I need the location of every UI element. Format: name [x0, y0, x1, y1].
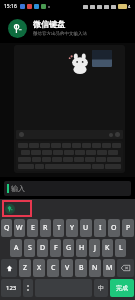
- button[interactable]: E: [27, 219, 38, 237]
- button[interactable]: Emoji: [94, 279, 108, 297]
- button[interactable]: X: [33, 259, 45, 277]
- button[interactable]: D: [37, 239, 48, 257]
- staticText: W: [16, 223, 23, 233]
- button[interactable]: Shift: [1, 259, 17, 277]
- staticText: E: [31, 223, 35, 233]
- button[interactable]: U: [80, 219, 92, 237]
- button[interactable]: WeChat keyboard switch: [2, 200, 32, 217]
- staticText: O: [111, 223, 117, 233]
- button[interactable]: 123: [1, 279, 21, 297]
- staticText: 完成: [116, 284, 128, 292]
- button[interactable]: Q: [1, 219, 12, 237]
- staticText: D: [40, 243, 46, 253]
- button[interactable]: O: [108, 219, 120, 237]
- staticText: K: [105, 243, 110, 253]
- staticText: P: [126, 223, 131, 233]
- staticText: J: [94, 243, 96, 253]
- button[interactable]: I: [94, 219, 106, 237]
- button[interactable]: W: [14, 219, 25, 237]
- staticText: R: [43, 223, 48, 233]
- button[interactable]: P: [122, 219, 134, 237]
- staticText: 123: [6, 284, 17, 292]
- button[interactable]: Backspace: [117, 259, 134, 277]
- button[interactable]: Comma: [23, 279, 33, 297]
- button[interactable]: 完成: [110, 279, 134, 297]
- button[interactable]: Y: [66, 219, 78, 237]
- staticText: 4: [128, 4, 131, 9]
- staticText: G: [66, 243, 72, 253]
- button[interactable]: B: [75, 259, 87, 277]
- button[interactable]: V: [61, 259, 73, 277]
- button[interactable]: 输入: [4, 181, 131, 196]
- staticText: L: [119, 243, 123, 253]
- staticText: Q: [4, 223, 10, 233]
- button[interactable]: WeChat Keyboard logo: [8, 19, 27, 38]
- button[interactable]: T: [53, 219, 64, 237]
- staticText: B: [79, 263, 84, 273]
- staticText: 15:16: [4, 3, 17, 10]
- staticText: 微信键盘: [33, 19, 65, 29]
- button[interactable]: F: [50, 239, 61, 257]
- button[interactable]: J: [89, 239, 100, 257]
- staticText: Y: [70, 223, 74, 233]
- button[interactable]: G: [63, 239, 74, 257]
- button[interactable]: N: [89, 259, 101, 277]
- staticText: F: [54, 243, 58, 253]
- button[interactable]: S: [24, 239, 35, 257]
- staticText: Z: [23, 263, 28, 273]
- staticText: S: [28, 243, 32, 253]
- staticText: 微信官方出品的中文输入法: [33, 31, 87, 37]
- staticText: T: [57, 223, 61, 233]
- staticText: 输入: [11, 184, 25, 193]
- button[interactable]: Z: [19, 259, 31, 277]
- button[interactable]: C: [47, 259, 59, 277]
- staticText: V: [65, 263, 70, 273]
- staticText: H: [79, 243, 85, 253]
- staticText: A: [14, 243, 19, 253]
- staticText: U: [83, 223, 89, 233]
- button[interactable]: K: [102, 239, 113, 257]
- button[interactable]: R: [40, 219, 51, 237]
- staticText: 中: [98, 284, 104, 292]
- button[interactable]: M: [103, 259, 115, 277]
- staticText: I: [99, 223, 102, 233]
- staticText: C: [51, 263, 56, 273]
- staticText: M: [106, 263, 113, 273]
- staticText: X: [37, 263, 42, 273]
- staticText: N: [92, 263, 98, 273]
- button[interactable]: H: [76, 239, 87, 257]
- button[interactable]: A: [10, 239, 22, 257]
- button[interactable]: L: [115, 239, 126, 257]
